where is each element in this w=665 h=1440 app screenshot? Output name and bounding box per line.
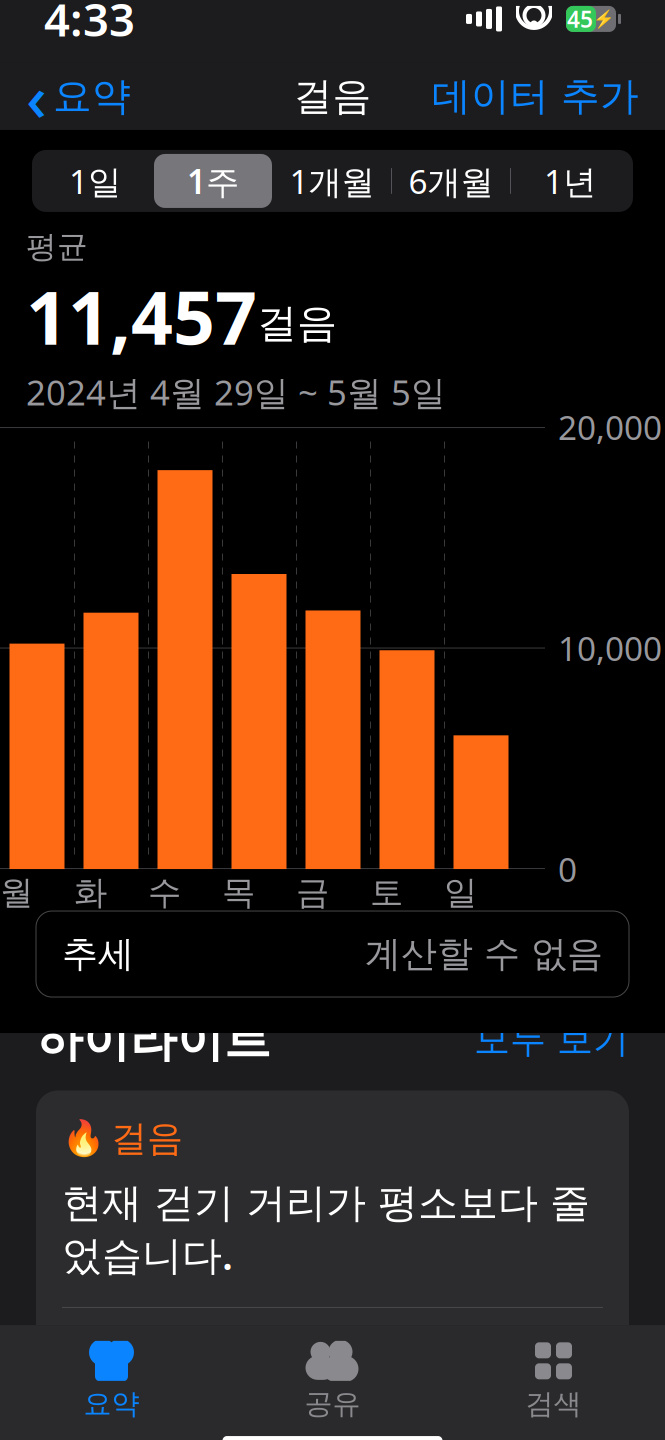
button[interactable]: 1년 <box>511 154 629 208</box>
staticText: 화 <box>74 872 107 913</box>
button[interactable]: 모두 보기 <box>474 1018 629 1062</box>
staticText: 1주 <box>187 159 239 203</box>
staticText: 1개월 <box>289 159 374 203</box>
staticText: 걸음 <box>293 73 371 120</box>
button[interactable]: 🔥 <box>36 1090 629 1401</box>
staticText: ⚡ <box>593 9 615 29</box>
staticText: 하이라이트 <box>36 1011 271 1068</box>
button[interactable]: 1일 <box>36 154 154 208</box>
staticText: 토 <box>370 872 403 913</box>
staticText: 1일 <box>69 159 121 203</box>
staticText: 20,000 <box>558 405 662 449</box>
staticText: 걸음 <box>111 1116 183 1161</box>
staticText: 요약 <box>83 1387 139 1421</box>
staticText: 2024년 4월 29일 ~ 5월 5일 <box>26 369 446 415</box>
staticText: 금 <box>296 872 329 913</box>
staticText: 걸음 <box>257 299 337 348</box>
staticText: 평균 <box>26 228 88 266</box>
button[interactable]: 6개월 <box>392 154 510 208</box>
button[interactable]: 1주 <box>154 154 272 208</box>
staticText: 계산할 수 없음 <box>365 932 603 976</box>
staticText: 평균 <box>335 1332 397 1369</box>
button[interactable]: ‹ <box>8 63 149 129</box>
staticText: 추세 <box>62 932 134 976</box>
button[interactable]: 검색 <box>443 1339 664 1423</box>
staticText: 0 <box>558 847 577 891</box>
button[interactable]: 데이터 추가 <box>414 63 657 129</box>
staticText: 오늘 <box>85 1330 151 1371</box>
staticText: 🔥 <box>62 1119 105 1158</box>
staticText: 1년 <box>544 159 596 203</box>
staticText: 11,457 <box>26 268 257 365</box>
staticText: 모두 보기 <box>474 1018 629 1062</box>
staticText: 요약 <box>53 73 131 120</box>
staticText: 일 <box>444 872 477 913</box>
staticText: 4:33 <box>44 0 135 49</box>
button[interactable]: 요약 <box>1 1339 222 1423</box>
button[interactable]: 공유 <box>222 1339 443 1423</box>
button[interactable]: 추세 <box>36 911 629 997</box>
staticText: 데이터 추가 <box>432 73 639 120</box>
staticText: 검색 <box>525 1387 581 1421</box>
staticText: 수 <box>148 872 181 913</box>
staticText: 10,000 <box>558 626 662 670</box>
staticText: 45 <box>567 4 593 34</box>
staticText: 6개월 <box>408 159 493 203</box>
staticText: 현재 걷기 거리가 평소보다 줄었습니다. <box>62 1179 590 1281</box>
button[interactable]: 1개월 <box>273 154 391 208</box>
staticText: ‹ <box>26 54 47 139</box>
staticText: 월 <box>0 872 33 913</box>
staticText: 목 <box>222 872 255 913</box>
staticText: 공유 <box>304 1387 360 1421</box>
